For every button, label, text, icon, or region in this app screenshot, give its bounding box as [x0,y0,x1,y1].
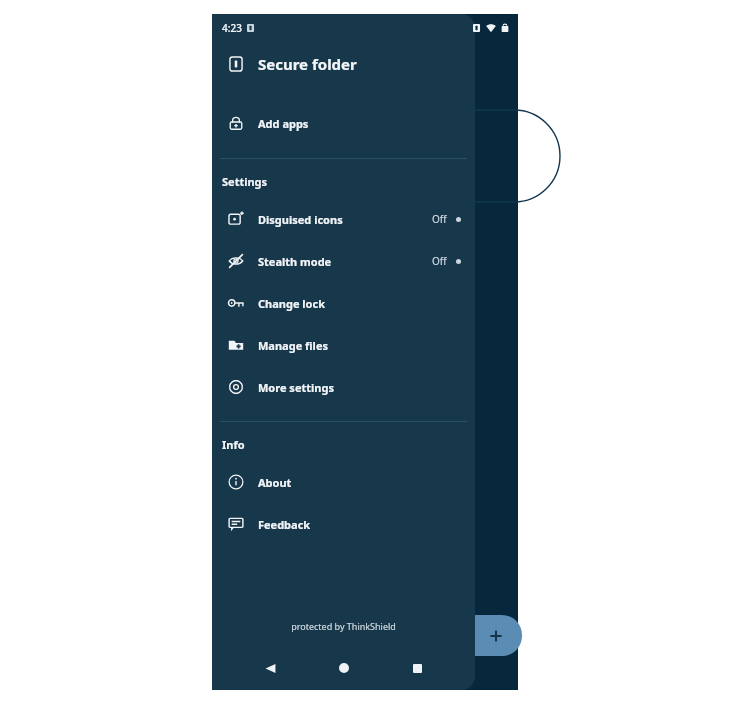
staticText: 4:23 [222,21,242,35]
staticText: Settings [222,174,268,189]
staticText: Off [432,254,447,268]
button[interactable]: Manage files [212,324,475,366]
staticText: Secure folder [258,54,357,74]
staticText: Change lock [258,296,325,311]
button[interactable]: Change lock [212,282,475,324]
staticText: About [258,475,292,490]
button[interactable]: Stealth mode [212,240,475,282]
button[interactable]: Disguised icons [212,198,475,240]
staticText: Feedback [258,517,311,532]
button[interactable]: Add app [470,615,522,656]
button[interactable]: Feedback [212,503,475,545]
staticText: Info [222,437,245,452]
button[interactable]: Add apps [212,102,475,144]
button[interactable]: About [212,461,475,503]
staticText: Stealth mode [258,254,332,269]
staticText: More settings [258,380,334,395]
staticText: Off [432,212,447,226]
button[interactable]: Recents [401,652,433,684]
button[interactable]: Back [254,652,286,684]
staticText: Disguised icons [258,212,343,227]
staticText: protected by ThinkShield [212,620,475,632]
button[interactable]: More settings [212,366,475,408]
staticText: Manage files [258,338,328,353]
button[interactable]: Home [328,652,360,684]
staticText: Add apps [258,116,309,131]
